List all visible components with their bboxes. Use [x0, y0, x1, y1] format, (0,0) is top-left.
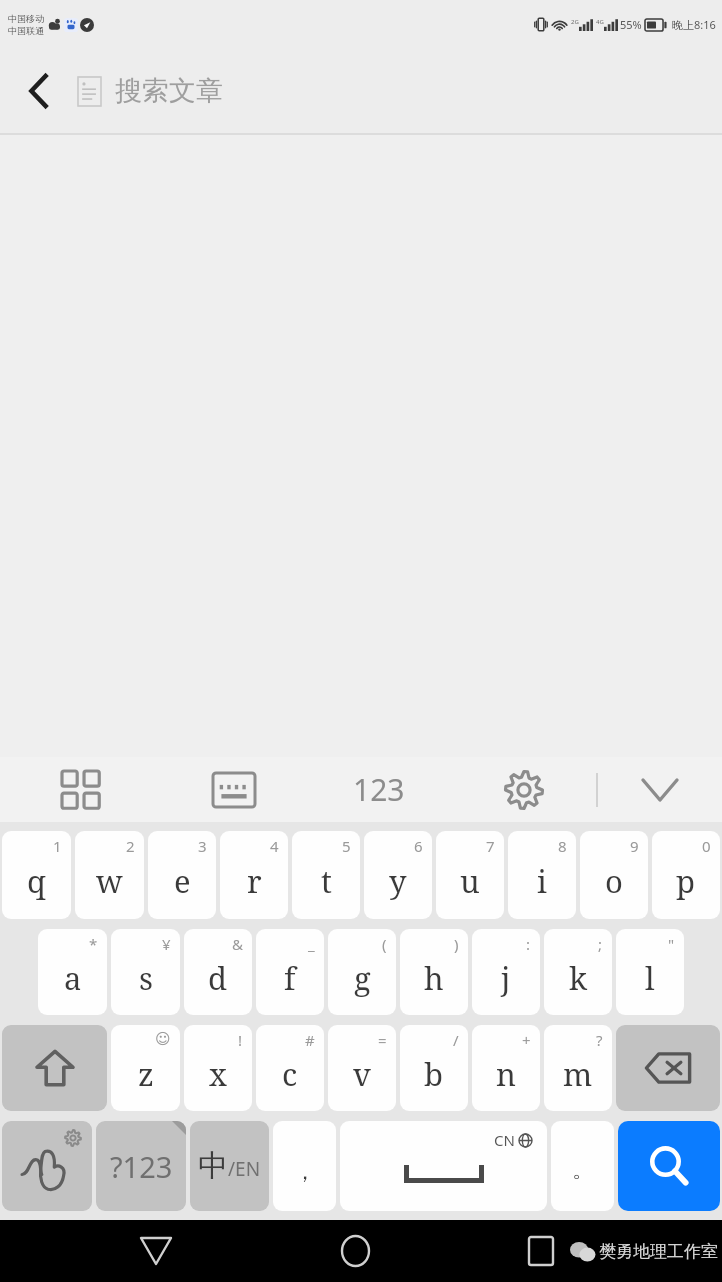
button[interactable]: Handwriting input	[2, 1121, 92, 1211]
staticText: f	[284, 957, 296, 999]
staticText: ¥	[162, 934, 171, 954]
button[interactable]: =	[328, 1025, 396, 1111]
staticText: !	[238, 1030, 243, 1050]
button[interactable]: 2	[75, 831, 144, 919]
button[interactable]: Keyboard layouts	[0, 757, 161, 822]
staticText: c	[282, 1053, 298, 1095]
button[interactable]: Back	[12, 65, 64, 117]
staticText: ☺	[155, 1030, 171, 1047]
button[interactable]: _	[256, 929, 324, 1015]
staticText: =	[378, 1030, 387, 1050]
staticText: s	[139, 957, 153, 999]
staticText: l	[645, 957, 655, 999]
button[interactable]: Comma	[273, 1121, 336, 1211]
staticText: e	[174, 860, 191, 902]
button[interactable]: 5	[292, 831, 360, 919]
staticText: "	[668, 934, 675, 954]
button[interactable]: :	[472, 929, 540, 1015]
button[interactable]: ?	[544, 1025, 612, 1111]
staticText: y	[389, 860, 407, 902]
button[interactable]: *	[38, 929, 107, 1015]
staticText: 1	[53, 836, 62, 856]
button[interactable]: 6	[364, 831, 432, 919]
button[interactable]: Switch language	[190, 1121, 269, 1211]
staticText: :	[526, 934, 531, 954]
staticText: 2	[126, 836, 135, 856]
staticText: 55%	[620, 17, 642, 32]
staticText: 5	[342, 836, 351, 856]
staticText: i	[537, 860, 547, 902]
staticText: 中国联通	[8, 25, 44, 36]
button[interactable]: Keyboard	[161, 757, 306, 822]
button[interactable]: !	[184, 1025, 252, 1111]
button[interactable]: 7	[436, 831, 504, 919]
staticText: ，	[294, 1158, 316, 1186]
staticText: 4G	[596, 18, 604, 26]
button[interactable]: Symbols	[96, 1121, 186, 1211]
button[interactable]: (	[328, 929, 396, 1015]
staticText: 9	[630, 836, 639, 856]
button[interactable]: +	[472, 1025, 540, 1111]
staticText: ?	[596, 1030, 603, 1050]
staticText: ;	[598, 934, 603, 954]
button[interactable]: "	[616, 929, 684, 1015]
staticText: g	[354, 957, 371, 999]
staticText: 2G	[571, 18, 579, 26]
staticText: /EN	[228, 1156, 261, 1182]
button[interactable]: #	[256, 1025, 324, 1111]
button[interactable]: Back	[127, 1222, 185, 1280]
staticText: 123	[353, 769, 405, 810]
button[interactable]: ;	[544, 929, 612, 1015]
button[interactable]: Hide keyboard	[598, 757, 722, 822]
button[interactable]: Recents	[512, 1222, 570, 1280]
staticText: x	[209, 1053, 227, 1095]
button[interactable]: Numbers	[306, 757, 451, 822]
staticText: q	[27, 860, 47, 902]
staticText: 3	[198, 836, 207, 856]
staticText: h	[424, 957, 444, 999]
button[interactable]: Shift	[2, 1025, 107, 1111]
staticText: n	[496, 1053, 516, 1095]
staticText: 6	[414, 836, 423, 856]
button[interactable]: 3	[148, 831, 216, 919]
staticText: +	[522, 1030, 531, 1050]
button[interactable]: 4	[220, 831, 288, 919]
staticText: 7	[486, 836, 495, 856]
button[interactable]: 9	[580, 831, 648, 919]
button[interactable]: &	[184, 929, 252, 1015]
button[interactable]: Period	[551, 1121, 614, 1211]
staticText: r	[247, 860, 262, 902]
staticText: &	[232, 934, 243, 954]
button[interactable]: ¥	[111, 929, 180, 1015]
button[interactable]: Backspace	[616, 1025, 720, 1111]
staticText: 中国移动	[8, 13, 44, 24]
staticText: d	[208, 957, 228, 999]
staticText: o	[605, 860, 623, 902]
button[interactable]: Space	[340, 1121, 547, 1211]
staticText: _	[308, 934, 315, 954]
button[interactable]: /	[400, 1025, 468, 1111]
staticText: k	[569, 957, 588, 999]
button[interactable]: ☺	[111, 1025, 180, 1111]
staticText: w	[96, 860, 123, 902]
button[interactable]: 0	[652, 831, 720, 919]
staticText: #	[305, 1030, 315, 1050]
staticText: z	[138, 1053, 154, 1095]
staticText: 4	[270, 836, 279, 856]
staticText: 。	[572, 1156, 594, 1184]
staticText: 晚上8:16	[672, 17, 716, 32]
button[interactable]: 1	[2, 831, 71, 919]
staticText: (	[382, 934, 387, 954]
staticText: 中	[198, 1147, 228, 1185]
button[interactable]: 8	[508, 831, 576, 919]
staticText: )	[454, 934, 459, 954]
staticText: ?123	[110, 1147, 173, 1186]
button[interactable]: )	[400, 929, 468, 1015]
staticText: *	[89, 934, 98, 954]
button[interactable]: Home	[326, 1222, 384, 1280]
button[interactable]: Search	[618, 1121, 720, 1211]
staticText: v	[353, 1053, 371, 1095]
staticText: CN	[494, 1130, 515, 1150]
button[interactable]: Settings	[451, 757, 596, 822]
staticText: p	[676, 860, 696, 902]
